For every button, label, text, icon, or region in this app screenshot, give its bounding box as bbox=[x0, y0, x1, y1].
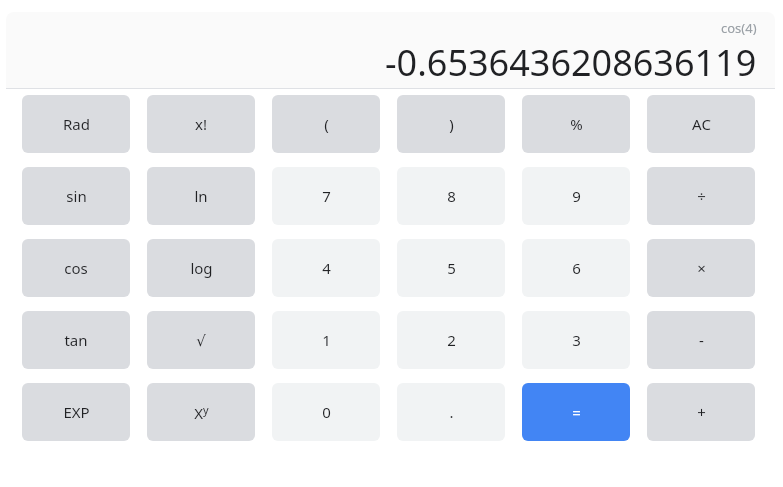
button[interactable]: log bbox=[147, 239, 255, 297]
button[interactable]: 9 bbox=[522, 167, 630, 225]
button[interactable]: 2 bbox=[397, 311, 505, 369]
button[interactable]: close parenthesis bbox=[397, 95, 505, 153]
button[interactable]: EXP bbox=[22, 383, 130, 441]
staticText: 9 bbox=[572, 186, 581, 206]
staticText: sin bbox=[66, 186, 87, 206]
button[interactable]: tan bbox=[22, 311, 130, 369]
button[interactable]: sin bbox=[22, 167, 130, 225]
button[interactable]: x! bbox=[147, 95, 255, 153]
button[interactable]: 0 bbox=[272, 383, 380, 441]
button[interactable]: multiply bbox=[647, 239, 755, 297]
button[interactable]: square root bbox=[147, 311, 255, 369]
staticText: 0 bbox=[322, 402, 331, 422]
button[interactable]: 5 bbox=[397, 239, 505, 297]
button[interactable]: 7 bbox=[272, 167, 380, 225]
button[interactable]: x to the power of y bbox=[147, 383, 255, 441]
staticText: ) bbox=[449, 114, 454, 134]
staticText: ln bbox=[194, 186, 208, 206]
button[interactable]: open parenthesis bbox=[272, 95, 380, 153]
staticText: tan bbox=[64, 330, 88, 350]
staticText: + bbox=[697, 402, 706, 422]
button[interactable]: cos bbox=[22, 239, 130, 297]
staticText: . bbox=[449, 402, 454, 422]
staticText: ( bbox=[324, 114, 329, 134]
staticText: 8 bbox=[447, 186, 456, 206]
staticText: log bbox=[190, 258, 213, 278]
staticText: cos bbox=[64, 258, 88, 278]
staticText: 2 bbox=[447, 330, 456, 350]
button[interactable]: minus bbox=[647, 311, 755, 369]
staticText: EXP bbox=[63, 402, 90, 422]
staticText: Rad bbox=[63, 114, 90, 134]
button[interactable]: 1 bbox=[272, 311, 380, 369]
staticText: 6 bbox=[572, 258, 581, 278]
staticText: ÷ bbox=[697, 186, 706, 206]
staticText: × bbox=[697, 258, 706, 278]
button[interactable]: 4 bbox=[272, 239, 380, 297]
staticText: cos(4) bbox=[721, 19, 757, 37]
button[interactable]: percent bbox=[522, 95, 630, 153]
staticText: √ bbox=[196, 332, 206, 349]
staticText: 1 bbox=[322, 330, 331, 350]
button[interactable]: ln bbox=[147, 167, 255, 225]
button[interactable]: divide bbox=[647, 167, 755, 225]
staticText: - bbox=[699, 330, 704, 350]
staticText: x! bbox=[195, 114, 207, 134]
button[interactable]: AC bbox=[647, 95, 755, 153]
staticText: 5 bbox=[447, 258, 456, 278]
button[interactable]: 3 bbox=[522, 311, 630, 369]
button[interactable]: Rad bbox=[22, 95, 130, 153]
staticText: AC bbox=[692, 114, 711, 134]
button[interactable]: 8 bbox=[397, 167, 505, 225]
staticText: 4 bbox=[322, 258, 331, 278]
button[interactable]: 6 bbox=[522, 239, 630, 297]
staticText: = bbox=[572, 402, 581, 422]
staticText: Xy bbox=[194, 402, 209, 423]
button[interactable]: equals bbox=[522, 383, 630, 441]
staticText: 3 bbox=[572, 330, 581, 350]
staticText: % bbox=[570, 114, 583, 134]
button[interactable]: plus bbox=[647, 383, 755, 441]
staticText: -0.6536436208636119 bbox=[385, 38, 757, 87]
staticText: 7 bbox=[322, 186, 331, 206]
button[interactable]: decimal point bbox=[397, 383, 505, 441]
